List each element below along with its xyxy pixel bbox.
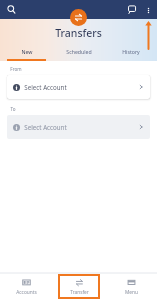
button[interactable]: Select Account bbox=[7, 75, 150, 99]
staticText: Menu bbox=[125, 289, 138, 296]
staticText: Scheduled bbox=[66, 48, 92, 55]
staticText: Select Account bbox=[24, 83, 67, 91]
staticText: From bbox=[10, 66, 22, 72]
button[interactable]: Scheduled bbox=[53, 44, 105, 61]
staticText: Transfers bbox=[55, 26, 102, 40]
staticText: History bbox=[122, 48, 140, 55]
button[interactable]: Messages bbox=[125, 2, 140, 17]
button[interactable]: More options bbox=[141, 3, 155, 17]
button[interactable]: Select Account bbox=[7, 115, 150, 139]
staticText: Accounts bbox=[16, 289, 37, 296]
button[interactable]: Transfer bbox=[58, 274, 100, 299]
button[interactable]: Transfer bbox=[70, 9, 87, 26]
staticText: To bbox=[10, 106, 16, 112]
button[interactable]: History bbox=[105, 44, 157, 61]
button[interactable]: New bbox=[0, 44, 53, 61]
button[interactable]: Accounts bbox=[5, 274, 48, 299]
staticText: Select Account bbox=[24, 123, 67, 131]
button[interactable]: Menu bbox=[110, 274, 152, 299]
button[interactable]: Search bbox=[4, 2, 19, 17]
staticText: New bbox=[21, 48, 33, 55]
staticText: Transfer bbox=[70, 289, 89, 296]
